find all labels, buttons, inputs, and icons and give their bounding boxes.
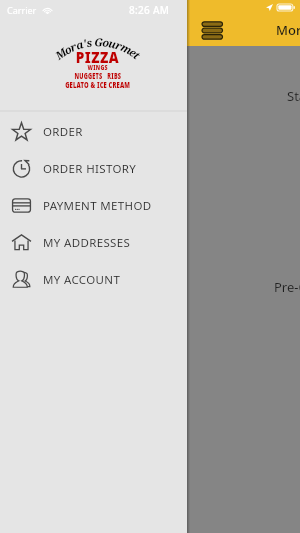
staticText: MY ADDRESSES bbox=[43, 235, 131, 251]
button[interactable]: Open navigation drawer bbox=[202, 21, 223, 45]
button[interactable]: Pre-Order bbox=[254, 274, 300, 300]
staticText: NUGGETS RIBS bbox=[74, 70, 121, 81]
button[interactable]: PAYMENT METHOD bbox=[0, 186, 187, 223]
staticText: PIZZA bbox=[76, 46, 119, 68]
button[interactable]: ORDER bbox=[0, 112, 187, 149]
staticText: ORDER bbox=[43, 124, 83, 140]
staticText: WINGS bbox=[88, 64, 108, 72]
staticText: ORDER HISTORY bbox=[43, 161, 137, 177]
staticText: MY ACCOUNT bbox=[43, 272, 121, 288]
button[interactable]: Start Order bbox=[267, 83, 300, 109]
staticText: 8:26 AM bbox=[129, 3, 170, 17]
staticText: Carrier bbox=[7, 4, 37, 16]
button[interactable]: MY ADDRESSES bbox=[0, 223, 187, 260]
staticText: PAYMENT METHOD bbox=[43, 198, 152, 214]
staticText: Pre-Order bbox=[274, 278, 300, 296]
staticText: GELATO & ICE CREAM bbox=[65, 79, 131, 90]
staticText: Mora's Gourmet Pizza bbox=[276, 21, 300, 39]
button[interactable]: ORDER HISTORY bbox=[0, 149, 187, 186]
staticText: Start Order bbox=[287, 87, 300, 105]
button[interactable]: MY ACCOUNT bbox=[0, 260, 187, 297]
